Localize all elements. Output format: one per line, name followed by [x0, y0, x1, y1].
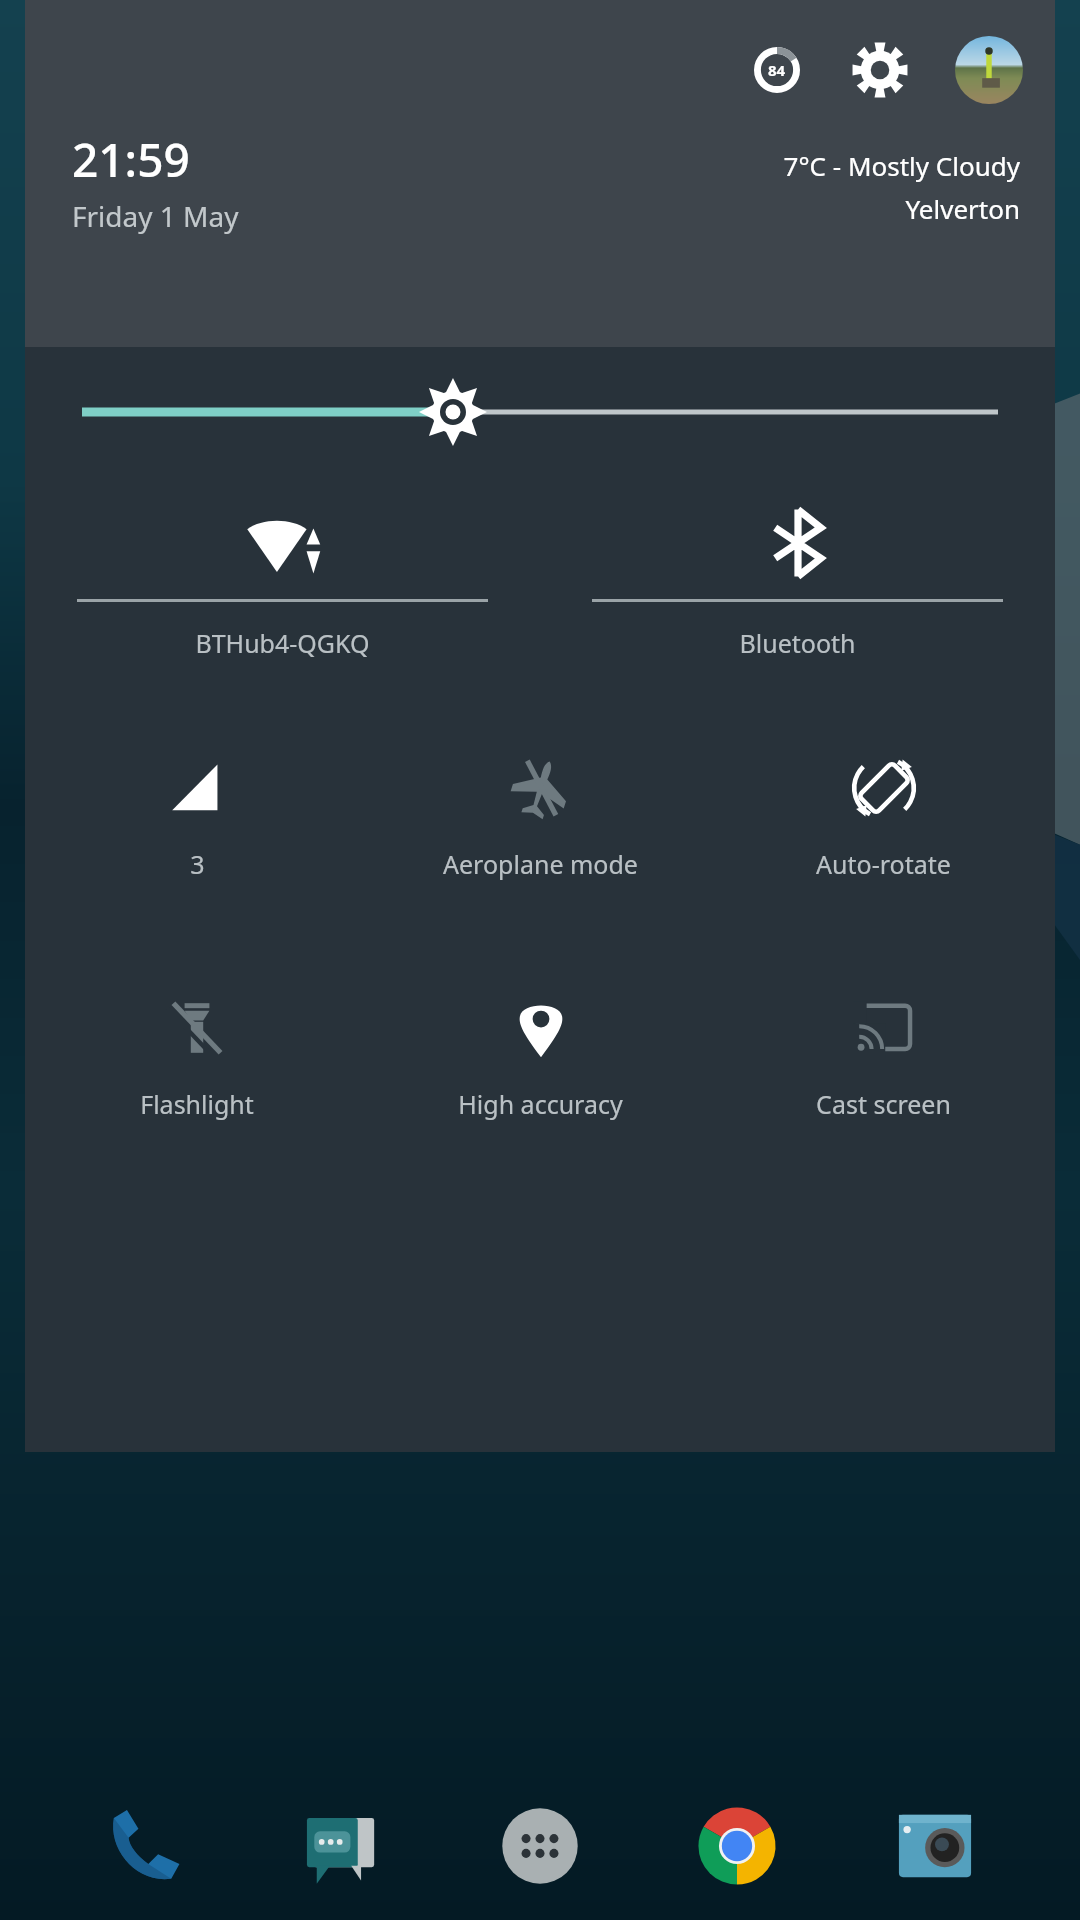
button[interactable]: BTHub4-QGKQ	[25, 477, 540, 717]
button[interactable]: Brightness	[82, 372, 998, 452]
button[interactable]: User profile	[955, 36, 1023, 104]
button[interactable]: High accuracy	[369, 957, 712, 1197]
staticText: 7°C - Mostly Cloudy	[783, 148, 1020, 183]
button[interactable]: Cast screen	[712, 957, 1055, 1197]
staticText: Yelverton	[905, 191, 1020, 226]
button[interactable]: 3	[25, 717, 369, 957]
staticText: 21:59	[72, 128, 190, 191]
staticText: Friday 1 May	[72, 197, 239, 235]
button[interactable]: Play Store	[928, 425, 1058, 445]
staticText: Auto-rotate	[816, 847, 951, 881]
staticText: Aeroplane mode	[443, 847, 638, 881]
button[interactable]: Settings	[849, 39, 911, 101]
button[interactable]: Flashlight	[25, 957, 369, 1197]
staticText: 84	[768, 60, 786, 80]
staticText: Bluetooth	[739, 626, 856, 660]
staticText: BTHub4-QGKQ	[195, 626, 370, 660]
button[interactable]: Battery 84 percent	[749, 42, 805, 98]
staticText: High accuracy	[458, 1087, 623, 1121]
staticText: Cast screen	[816, 1087, 951, 1121]
staticText: 3	[190, 847, 205, 881]
staticText: Flashlight	[140, 1087, 254, 1121]
button[interactable]: Chrome	[685, 1794, 789, 1898]
button[interactable]: Messages	[291, 1794, 395, 1898]
button[interactable]: Phone	[93, 1794, 197, 1898]
button[interactable]: Auto-rotate	[712, 717, 1055, 957]
button[interactable]: Apps	[488, 1794, 592, 1898]
button[interactable]: Aeroplane mode	[369, 717, 712, 957]
button[interactable]: Camera	[883, 1794, 987, 1898]
button[interactable]: Bluetooth	[540, 477, 1055, 717]
